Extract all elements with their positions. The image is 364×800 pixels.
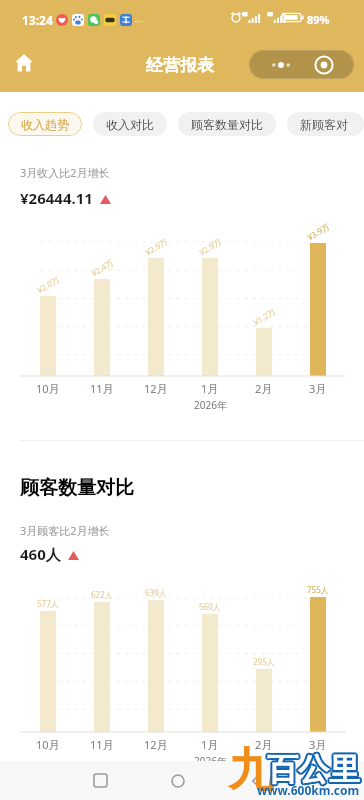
staticText: 百公里 bbox=[266, 751, 359, 790]
staticText: ¥2.9万 bbox=[143, 235, 169, 257]
button[interactable]: 收入对比 bbox=[93, 112, 167, 136]
staticText: 百公里 bbox=[267, 752, 360, 791]
staticText: 3月 bbox=[309, 737, 327, 752]
staticText: 百公里 bbox=[268, 750, 361, 789]
button[interactable]: 顾客数量对比 bbox=[178, 112, 276, 136]
button[interactable]: Menu bbox=[249, 50, 354, 79]
staticText: 收入趋势 bbox=[21, 117, 69, 132]
staticText: 13:24 bbox=[22, 12, 53, 28]
staticText: 收入对比 bbox=[106, 117, 154, 132]
staticText: ··· bbox=[135, 14, 144, 28]
staticText: 12月 bbox=[144, 381, 168, 396]
staticText: 460人 bbox=[20, 544, 61, 564]
staticText: 2月 bbox=[255, 381, 273, 396]
staticText: 3月 bbox=[309, 381, 327, 396]
staticText: 百公里 bbox=[268, 748, 361, 787]
staticText: 2026年 bbox=[194, 754, 227, 768]
staticText: 百公里 bbox=[267, 748, 360, 787]
staticText: 295人 bbox=[253, 656, 275, 667]
staticText: www.600km.com bbox=[257, 782, 360, 798]
staticText: 顾客数量对比 bbox=[20, 476, 134, 500]
button[interactable]: Home bbox=[6, 45, 42, 81]
staticText: 2026年 bbox=[194, 398, 227, 412]
staticText: 百公里 bbox=[265, 749, 358, 788]
staticText: 11月 bbox=[90, 381, 114, 396]
button[interactable]: Recent apps bbox=[80, 761, 120, 800]
staticText: 百公里 bbox=[268, 752, 361, 791]
staticText: 百公里 bbox=[269, 750, 362, 789]
staticText: 百公里 bbox=[266, 752, 359, 791]
button[interactable]: Home bbox=[158, 761, 198, 800]
button[interactable]: 新顾客对比 bbox=[287, 112, 364, 136]
staticText: 1月 bbox=[201, 381, 219, 396]
staticText: 12月 bbox=[144, 737, 168, 752]
staticText: 577人 bbox=[37, 598, 59, 609]
staticText: ¥1.2万 bbox=[251, 305, 277, 327]
staticText: 经营报表 bbox=[146, 55, 214, 76]
staticText: ¥26444.11 bbox=[20, 188, 93, 208]
staticText: 百公里 bbox=[269, 749, 362, 788]
staticText: 百公里 bbox=[265, 751, 358, 790]
staticText: 百公里 bbox=[266, 748, 359, 787]
staticText: 10月 bbox=[36, 737, 60, 752]
staticText: 百公里 bbox=[267, 749, 360, 788]
staticText: ¥2.4万 bbox=[89, 256, 115, 278]
button[interactable]: 收入趋势 bbox=[8, 112, 82, 136]
staticText: 九 bbox=[228, 742, 274, 800]
staticText: 百公里 bbox=[268, 751, 361, 790]
button[interactable]: Back bbox=[236, 761, 276, 800]
staticText: 百公里 bbox=[269, 751, 362, 790]
staticText: 百公里 bbox=[267, 751, 360, 790]
staticText: ¥2.9万 bbox=[197, 235, 223, 257]
staticText: 560人 bbox=[199, 601, 221, 612]
staticText: 百公里 bbox=[266, 750, 359, 789]
staticText: 622人 bbox=[91, 589, 113, 600]
staticText: 百公里 bbox=[268, 749, 361, 788]
staticText: 顾客数量对比 bbox=[191, 117, 263, 132]
staticText: 3月收入比2月增长 bbox=[20, 165, 110, 180]
staticText: ¥2.0万 bbox=[35, 273, 61, 295]
staticText: 639人 bbox=[145, 587, 167, 598]
staticText: 百公里 bbox=[266, 749, 359, 788]
staticText: 2月 bbox=[255, 737, 273, 752]
staticText: 3月顾客比2月增长 bbox=[20, 523, 110, 538]
staticText: 新顾客对比 bbox=[300, 117, 351, 132]
staticText: 百公里 bbox=[267, 750, 360, 789]
staticText: 755人 bbox=[307, 584, 329, 595]
staticText: 1月 bbox=[201, 737, 219, 752]
staticText: 百公里 bbox=[265, 750, 358, 789]
staticText: 89% bbox=[307, 12, 330, 27]
staticText: 10月 bbox=[36, 381, 60, 396]
staticText: 11月 bbox=[90, 737, 114, 752]
staticText: 百公里 bbox=[267, 750, 360, 789]
staticText: ¥3.9万 bbox=[305, 220, 331, 242]
